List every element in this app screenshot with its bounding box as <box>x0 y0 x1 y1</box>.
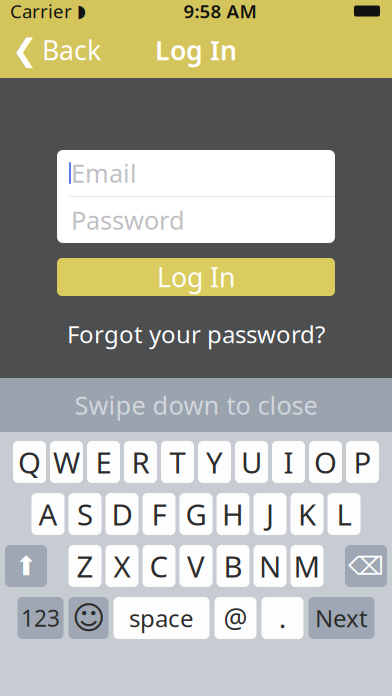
button[interactable]: Delete <box>345 545 387 587</box>
staticText: Email <box>71 156 137 190</box>
staticText: Z <box>76 546 93 585</box>
button[interactable]: X <box>105 545 138 587</box>
staticText: X <box>113 546 130 585</box>
staticText: V <box>187 546 205 585</box>
staticText: R <box>131 442 149 481</box>
button[interactable]: O <box>309 441 342 483</box>
button[interactable]: C <box>142 545 175 587</box>
staticText: ⬆ <box>15 551 37 581</box>
button[interactable]: H <box>216 493 249 535</box>
button[interactable]: F <box>142 493 175 535</box>
button[interactable]: B <box>216 545 249 587</box>
staticText: space <box>129 602 194 634</box>
staticText: @ <box>223 600 247 636</box>
button[interactable]: Next <box>308 597 374 639</box>
staticText: B <box>223 546 242 585</box>
button[interactable]: ❮ <box>0 24 109 76</box>
button[interactable]: Y <box>198 441 231 483</box>
button[interactable]: L <box>327 493 360 535</box>
staticText: Log In <box>157 259 235 295</box>
staticText: K <box>298 494 316 533</box>
staticText: ◗ <box>77 1 86 21</box>
staticText: ❮ <box>12 33 38 67</box>
staticText: Back <box>42 32 101 68</box>
button[interactable]: G <box>179 493 212 535</box>
button[interactable]: S <box>68 493 101 535</box>
staticText: C <box>149 546 168 585</box>
staticText: Carrier <box>10 0 72 23</box>
staticText: Log In <box>155 32 237 68</box>
button[interactable]: U <box>235 441 268 483</box>
staticText: ⌫ <box>348 552 384 580</box>
button[interactable]: D <box>105 493 138 535</box>
button[interactable]: A <box>31 493 64 535</box>
button[interactable]: Emoji <box>68 597 108 639</box>
button[interactable]: Swipe down to close <box>0 378 392 432</box>
staticText: G <box>185 494 206 533</box>
button[interactable]: 123 <box>17 597 63 639</box>
staticText: . <box>279 600 286 636</box>
button[interactable]: space <box>113 597 209 639</box>
button[interactable]: V <box>179 545 212 587</box>
staticText: F <box>151 494 166 533</box>
staticText: M <box>293 546 320 585</box>
staticText: H <box>222 494 244 533</box>
staticText: A <box>38 494 57 533</box>
staticText: U <box>241 442 262 481</box>
staticText: Y <box>206 442 223 481</box>
button[interactable]: N <box>253 545 286 587</box>
staticText: S <box>77 494 93 533</box>
button[interactable]: J <box>253 493 286 535</box>
staticText: L <box>336 494 351 533</box>
staticText: 123 <box>21 603 60 633</box>
staticText: Swipe down to close <box>74 388 317 422</box>
button[interactable]: Shift <box>5 545 47 587</box>
button[interactable]: K <box>290 493 323 535</box>
button[interactable]: @ <box>214 597 256 639</box>
staticText: J <box>266 494 274 533</box>
staticText: W <box>53 442 80 481</box>
button[interactable]: Z <box>68 545 101 587</box>
button[interactable]: I <box>272 441 305 483</box>
button[interactable]: W <box>50 441 83 483</box>
button[interactable]: T <box>161 441 194 483</box>
staticText: E <box>95 442 111 481</box>
staticText: Next <box>315 602 368 634</box>
button[interactable]: Q <box>13 441 46 483</box>
button[interactable]: Log In <box>57 258 335 296</box>
staticText: Password <box>71 203 185 237</box>
staticText: N <box>259 546 281 585</box>
staticText: Forgot your password? <box>67 318 325 350</box>
button[interactable]: M <box>290 545 323 587</box>
button[interactable]: E <box>87 441 120 483</box>
staticText: Q <box>18 442 41 481</box>
button[interactable]: P <box>346 441 379 483</box>
button[interactable]: R <box>124 441 157 483</box>
staticText: O <box>314 442 337 481</box>
button[interactable]: Forgot your password? <box>57 312 335 356</box>
staticText: I <box>283 442 293 481</box>
staticText: D <box>111 494 132 533</box>
staticText: P <box>353 442 371 481</box>
staticText: ☺ <box>72 600 105 636</box>
staticText: T <box>169 442 185 481</box>
staticText: 9:58 AM <box>183 0 256 23</box>
button[interactable]: . <box>261 597 303 639</box>
